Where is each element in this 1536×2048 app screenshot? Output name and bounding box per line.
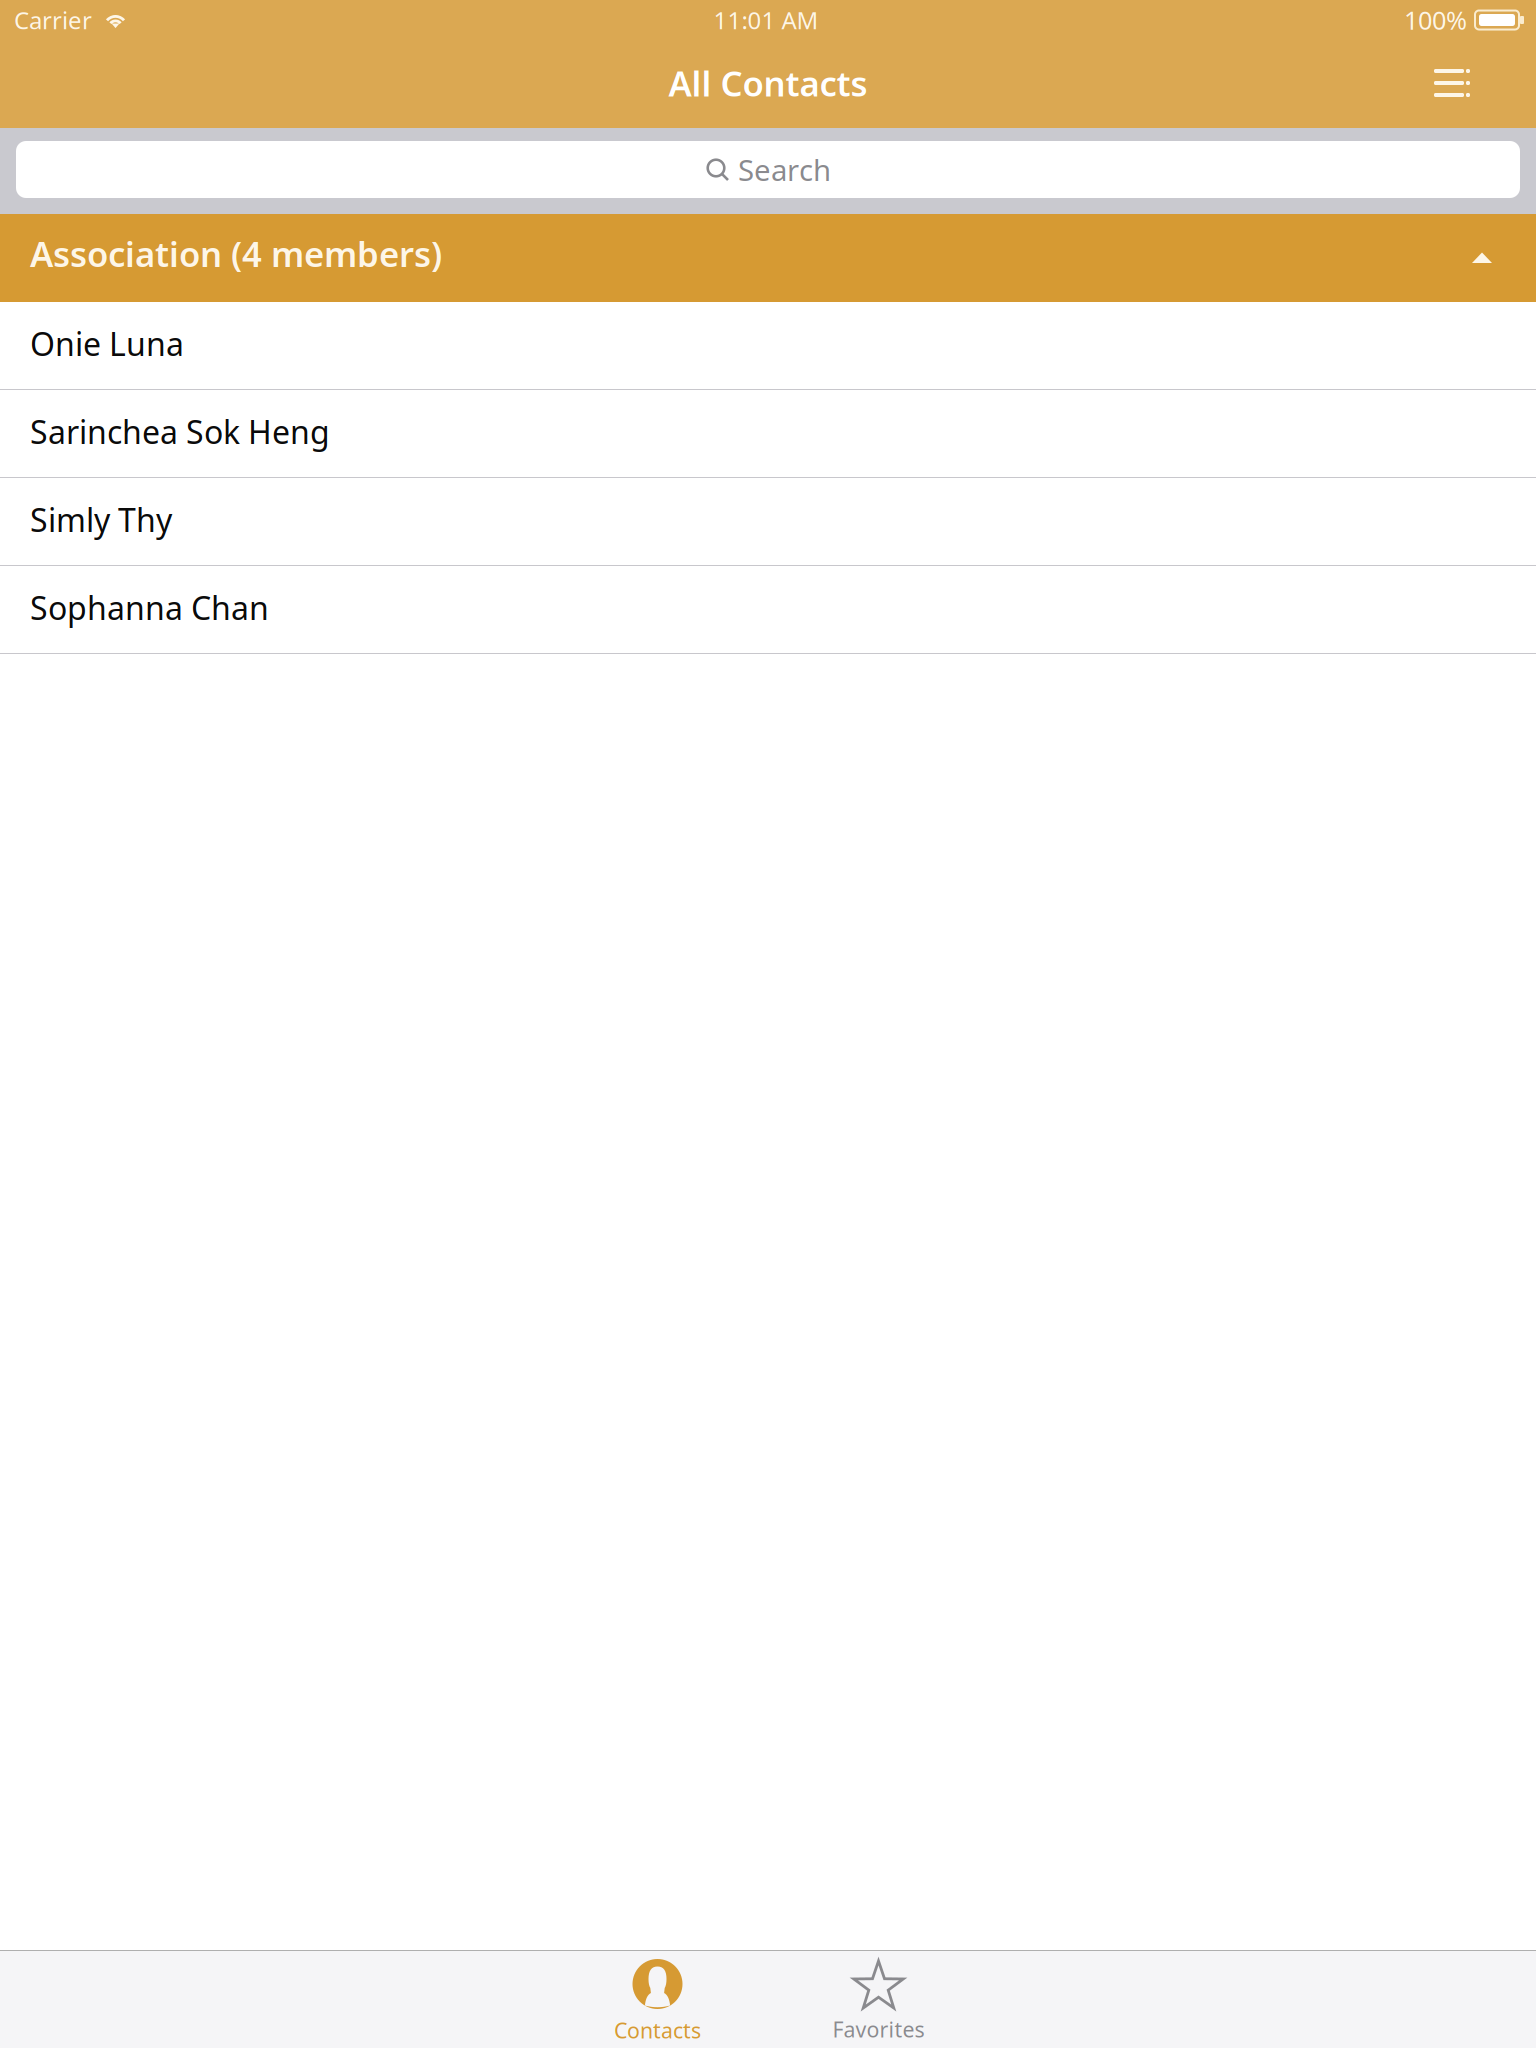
button[interactable]: Favorites (768, 1951, 989, 2048)
button[interactable]: Menu (1406, 40, 1536, 126)
button[interactable]: Simly Thy (0, 478, 1536, 566)
button[interactable]: Search (0, 128, 1536, 214)
button[interactable]: Sarinchea Sok Heng (0, 390, 1536, 478)
staticText: Contacts (614, 2016, 701, 2044)
staticText: Sarinchea Sok Heng (30, 410, 330, 453)
staticText: Simly Thy (30, 498, 172, 541)
staticText: Sophanna Chan (30, 586, 269, 629)
staticText: All Contacts (668, 60, 867, 106)
staticText: 11:01 AM (713, 4, 818, 36)
button[interactable]: Onie Luna (0, 302, 1536, 390)
staticText: Carrier (14, 4, 92, 36)
staticText: Search (738, 150, 831, 189)
button[interactable]: Contacts (547, 1951, 768, 2048)
button[interactable]: Sophanna Chan (0, 566, 1536, 654)
button[interactable]: Association (4 members) (0, 214, 1536, 302)
staticText: 100% (1404, 3, 1467, 37)
staticText: Onie Luna (30, 322, 184, 365)
staticText: Favorites (832, 2015, 924, 2043)
staticText: Association (4 members) (30, 230, 442, 276)
